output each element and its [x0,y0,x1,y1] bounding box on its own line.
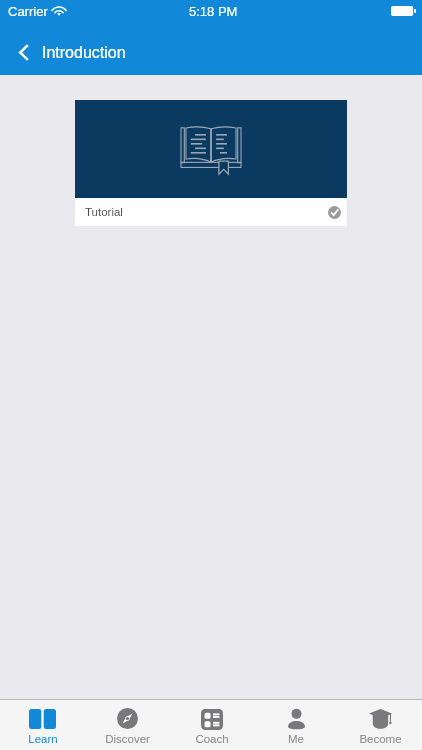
button[interactable]: Tutorial [75,100,347,226]
staticText: Discover [105,733,150,746]
button[interactable]: Me [254,700,338,750]
button[interactable]: Learn [0,700,85,750]
staticText: Carrier [8,4,48,19]
staticText: Introduction [42,44,126,62]
button[interactable]: Discover [85,700,170,750]
button[interactable]: Back [0,22,42,75]
staticText: Me [288,733,304,746]
button[interactable]: Coach [170,700,254,750]
staticText: Coach [195,733,229,746]
staticText: Become [359,733,402,746]
staticText: 5:18 PM [189,4,238,19]
staticText: Learn [28,733,58,746]
button[interactable]: Become [338,700,422,750]
staticText: Tutorial [85,206,123,219]
